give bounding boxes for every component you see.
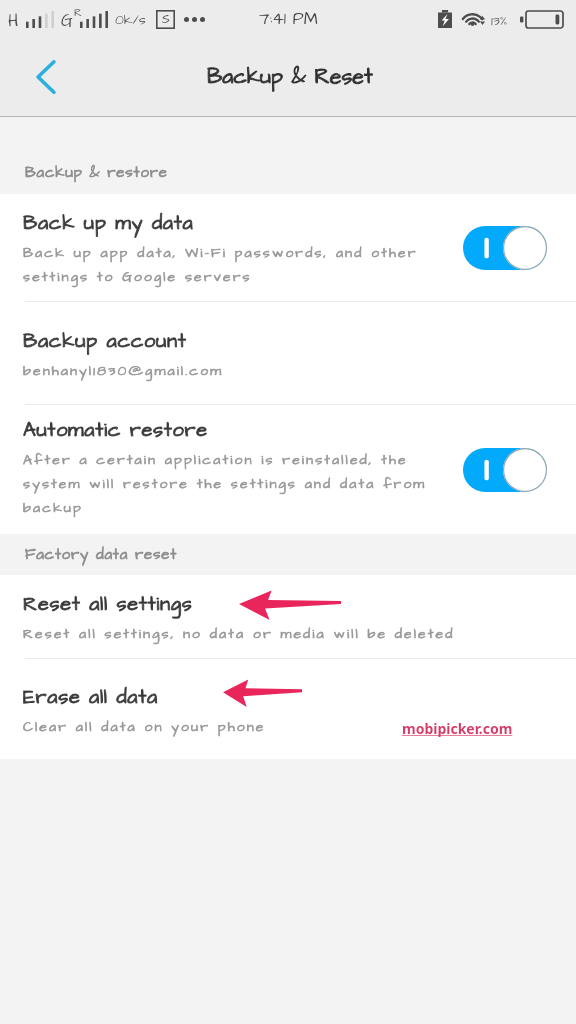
button[interactable]: Back [24, 55, 68, 99]
staticText: 7:41 PM [259, 7, 318, 31]
staticText: Back up my data [23, 209, 194, 237]
staticText: Backup & restore [25, 162, 168, 183]
button[interactable]: Toggle backup [463, 226, 547, 270]
staticText: R [74, 5, 82, 20]
staticText: 0k/s [115, 10, 146, 29]
button[interactable]: Erase all data [0, 659, 576, 759]
staticText: Automatic restore [23, 416, 208, 444]
staticText: G [61, 9, 73, 33]
button[interactable]: Back up my data [0, 194, 576, 301]
staticText: H [8, 9, 19, 33]
staticText: Back up app data, Wi-Fi passwords, and o… [23, 243, 418, 287]
staticText: After a certain application is reinstall… [23, 450, 427, 518]
staticText: Reset all settings [23, 590, 193, 618]
staticText: Backup account [23, 327, 187, 355]
staticText: Backup & Reset [207, 62, 373, 92]
staticText: Backup & restore [25, 162, 168, 183]
button[interactable]: Toggle backup [463, 448, 547, 492]
staticText: Backup & Reset [207, 62, 373, 92]
staticText: benhanyl1830@gmail.com [23, 361, 224, 380]
staticText: Reset all settings, no data or media wil… [23, 624, 455, 643]
staticText: Back up app data, Wi-Fi passwords, and o… [23, 243, 418, 287]
staticText: mobipicker.com [402, 719, 513, 738]
staticText: Erase all data [23, 683, 158, 711]
staticText: After a certain application is reinstall… [23, 450, 427, 518]
button[interactable]: Reset all settings [0, 575, 576, 658]
staticText: 13% [491, 11, 508, 30]
staticText: Automatic restore [23, 416, 208, 444]
staticText: Factory data reset [25, 544, 178, 565]
staticText: Clear all data on your phone [23, 717, 266, 736]
staticText: Back up my data [23, 209, 194, 237]
staticText: Erase all data [23, 683, 158, 711]
staticText: Backup account [23, 327, 187, 355]
staticText: benhanyl1830@gmail.com [23, 361, 224, 380]
staticText: Clear all data on your phone [23, 717, 266, 736]
staticText: Reset all settings, no data or media wil… [23, 624, 455, 643]
button[interactable]: Automatic restore [0, 405, 576, 534]
button[interactable]: Backup account [0, 302, 576, 404]
staticText: Reset all settings [23, 590, 193, 618]
staticText: Factory data reset [25, 544, 178, 565]
staticText: S [162, 11, 170, 28]
